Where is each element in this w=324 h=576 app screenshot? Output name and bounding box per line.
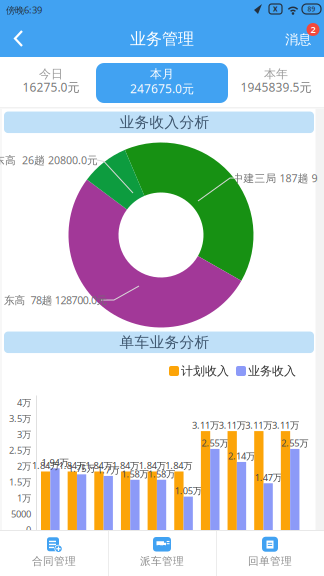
staticText: 消息 [285,31,311,48]
staticText: 3.11万 [219,419,246,431]
staticText: 1.84万 [165,459,192,472]
staticText: 3万 [17,428,31,440]
staticText: 247675.0元 [130,80,194,96]
staticText: 2万 [17,460,31,472]
staticText: 计划收入 [181,364,229,378]
staticText: 业务收入 [248,364,296,378]
button[interactable]: 今日 [3,57,99,107]
staticText: 1.05万 [175,484,202,497]
staticText: 1.84万 [139,459,166,472]
staticText: 1.47万 [255,471,282,483]
staticText: 1.84万 [112,459,139,472]
staticText: 2.55万 [281,437,308,449]
staticText: 1945839.5元 [240,79,311,95]
staticText: 16275.0元 [22,79,79,95]
button[interactable]: 合同管理 [2,530,106,574]
staticText: 今日 [39,67,63,81]
staticText: 4万 [17,396,31,409]
staticText: 3.11万 [272,419,299,431]
staticText: 本年 [264,67,288,81]
staticText: 本月 [150,67,174,81]
button[interactable]: 本年 [221,57,324,107]
button[interactable]: 派车管理 [110,530,214,574]
staticText: 89 [307,5,315,13]
staticText: 0 [26,523,31,536]
staticText: 业务管理 [130,29,194,49]
staticText: 合同管理 [32,555,76,568]
button[interactable]: 本月 [96,63,228,103]
staticText: 单车业务分析 [119,333,209,351]
staticText: 1.84万 [32,459,59,472]
staticText: x [273,3,278,14]
button[interactable]: 消息 [281,18,321,55]
staticText: 业务收入分析 [119,113,209,131]
button[interactable]: 返回 [8,23,38,53]
staticText: 3.11万 [192,419,219,431]
staticText: 东高 26趟 20800.0元 [0,153,98,167]
staticText: 回单管理 [248,555,292,568]
staticText: 3.11万 [245,419,272,431]
staticText: 1.75万 [68,462,95,475]
staticText: 2 [310,23,315,36]
staticText: 派车管理 [140,555,184,568]
staticText: 1.84万 [59,459,86,472]
staticText: 1.94万 [41,456,68,468]
staticText: 5000 [11,508,31,520]
staticText: 1万 [17,492,31,504]
staticText: 中建三局 187趟 98 [232,171,323,185]
staticText: 1.84万 [85,459,112,472]
staticText: 1.58万 [121,468,148,480]
staticText: 2.5万 [9,444,31,456]
staticText: 3.5万 [9,412,31,425]
staticText: 2.14万 [228,450,255,462]
staticText: 1.5万 [9,476,31,488]
staticText: 傍晚6:39 [6,4,42,16]
staticText: 1.58万 [148,468,175,480]
button[interactable]: 回单管理 [218,530,322,574]
staticText: 1.7万 [97,464,119,476]
staticText: 2.55万 [201,437,228,449]
staticText: 东高 78趟 128700.0元 [4,293,108,307]
